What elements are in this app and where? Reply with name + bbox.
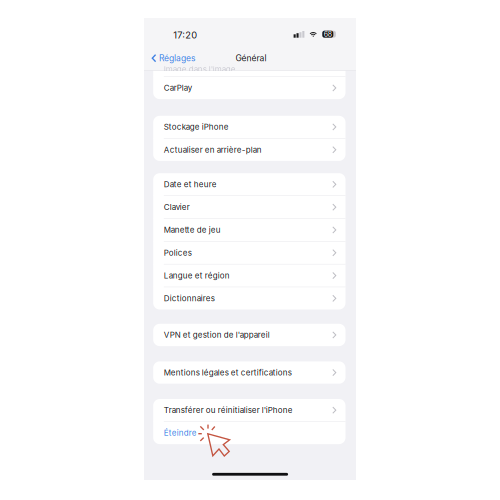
staticText: Clavier (164, 202, 190, 212)
staticText: CarPlay (164, 83, 192, 93)
staticText: Stockage iPhone (164, 122, 229, 132)
button[interactable]: Réglages (144, 50, 200, 66)
button[interactable]: Polices (153, 242, 345, 264)
button[interactable]: Dictionnaires (153, 287, 345, 309)
staticText: Mentions légales et certifications (164, 368, 292, 377)
staticText: Dictionnaires (164, 293, 215, 303)
button[interactable]: CarPlay (153, 77, 345, 99)
button[interactable]: Transférer ou réinitialiser l'iPhone (153, 399, 345, 421)
staticText: Image dans l'image (164, 64, 236, 74)
staticText: 68 (324, 30, 332, 38)
staticText: Langue et région (164, 271, 230, 280)
button[interactable]: Manette de jeu (153, 219, 345, 241)
button[interactable]: Éteindre (153, 422, 345, 444)
button[interactable]: Stockage iPhone (153, 116, 345, 138)
button[interactable]: Langue et région (153, 264, 345, 287)
staticText: Image dans l'image (164, 60, 236, 70)
staticText: Réglages (159, 53, 196, 63)
staticText: Manette de jeu (164, 225, 221, 235)
staticText: Général (235, 53, 266, 63)
staticText: VPN et gestion de l'appareil (164, 330, 270, 340)
staticText: Transférer ou réinitialiser l'iPhone (164, 405, 293, 415)
staticText: Actualiser en arrière-plan (164, 145, 262, 155)
button[interactable]: Clavier (153, 196, 345, 218)
button[interactable]: Général (230, 50, 271, 66)
button[interactable]: Date et heure (153, 173, 345, 195)
staticText: Date et heure (164, 179, 217, 189)
button[interactable]: VPN et gestion de l'appareil (153, 324, 345, 346)
button[interactable]: Actualiser en arrière-plan (153, 139, 345, 161)
staticText: 17:20 (173, 29, 197, 41)
staticText: Polices (164, 248, 192, 258)
button[interactable]: Mentions légales et certifications (153, 361, 345, 384)
staticText: Éteindre (164, 428, 197, 438)
